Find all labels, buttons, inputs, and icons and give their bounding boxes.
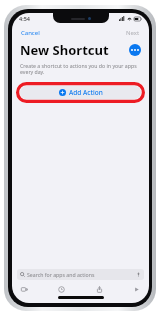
- button[interactable]: Search for apps and actions: [17, 269, 144, 280]
- staticText: Search for apps and actions: [27, 271, 95, 278]
- button[interactable]: More options: [129, 44, 141, 56]
- staticText: Add Action: [69, 88, 103, 97]
- staticText: Create a shortcut to actions you do in y…: [20, 62, 141, 76]
- button[interactable]: Add Action: [20, 86, 141, 99]
- staticText: Next: [126, 29, 140, 37]
- button[interactable]: Settings: [56, 284, 67, 295]
- button[interactable]: Share: [94, 284, 105, 295]
- button[interactable]: Cancel: [20, 27, 41, 39]
- staticText: New Shortcut: [20, 41, 109, 59]
- button[interactable]: Shortcut settings: [19, 284, 30, 295]
- staticText: Cancel: [21, 29, 40, 37]
- button[interactable]: Next: [125, 27, 141, 39]
- button[interactable]: Run shortcut: [131, 284, 142, 295]
- staticText: 4:54: [19, 15, 30, 22]
